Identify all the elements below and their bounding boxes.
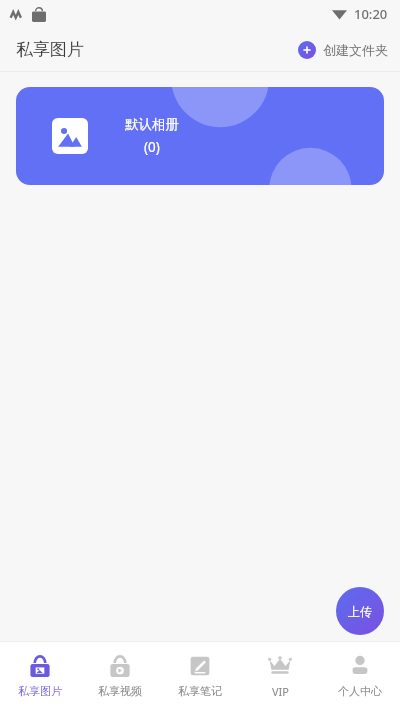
other: 私享笔记 <box>188 654 212 678</box>
button[interactable]: 上传 <box>336 587 384 635</box>
button[interactable]: VIP <box>240 646 320 707</box>
staticText: 默认相册 <box>125 116 179 133</box>
staticText: VIP <box>272 684 289 699</box>
other: 个人中心 <box>348 654 372 678</box>
staticText: 创建文件夹 <box>323 42 388 58</box>
button[interactable]: 私享视频 <box>80 646 160 706</box>
other: 私享图片 <box>28 654 52 678</box>
other: 私享视频 <box>108 654 132 678</box>
staticText: 私享图片 <box>16 39 84 60</box>
staticText: 10:20 <box>354 5 388 23</box>
button[interactable]: 个人中心 <box>320 646 400 706</box>
other: VIP <box>268 654 292 678</box>
staticText: (0) <box>144 138 160 156</box>
staticText: 私享图片 <box>18 684 62 698</box>
button[interactable]: 私享笔记 <box>160 646 240 706</box>
staticText: 私享视频 <box>98 684 142 698</box>
button[interactable]: 私享图片 <box>0 646 80 706</box>
button[interactable]: 默认相册 <box>16 87 384 185</box>
staticText: 私享笔记 <box>178 684 222 698</box>
button[interactable]: 创建文件夹 <box>298 41 388 59</box>
staticText: 上传 <box>348 604 372 619</box>
staticText: 个人中心 <box>338 684 382 698</box>
